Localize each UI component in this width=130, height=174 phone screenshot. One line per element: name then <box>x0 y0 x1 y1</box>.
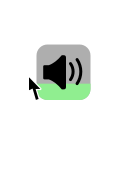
button[interactable]: Volume <box>36 44 90 100</box>
